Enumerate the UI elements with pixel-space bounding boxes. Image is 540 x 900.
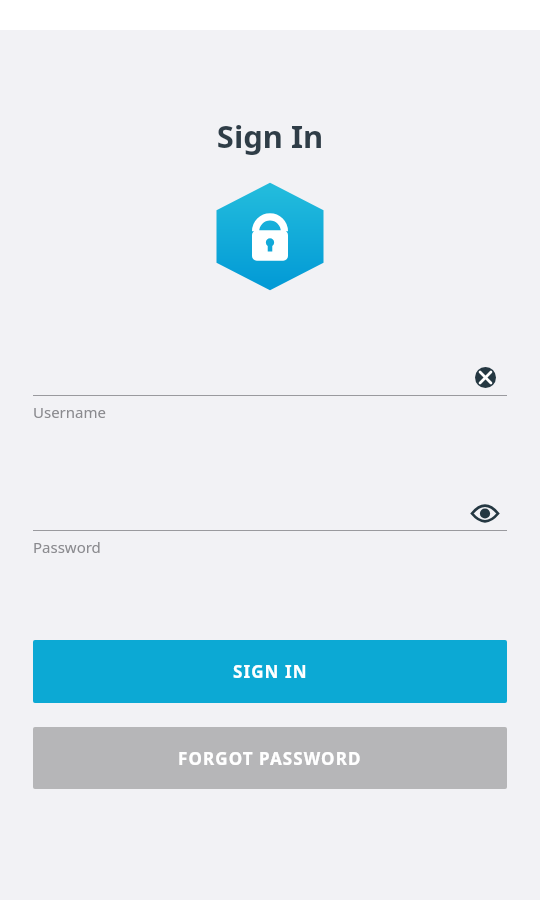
button[interactable]: Show password [468, 496, 502, 530]
staticText: Sign In [0, 115, 540, 157]
staticText: Username [33, 402, 106, 422]
button[interactable]: Clear username [469, 361, 501, 393]
button[interactable]: FORGOT PASSWORD [33, 727, 507, 789]
staticText: FORGOT PASSWORD [178, 747, 362, 770]
button[interactable]: SIGN IN [33, 640, 507, 703]
staticText: SIGN IN [233, 660, 308, 683]
staticText: Password [33, 537, 101, 557]
